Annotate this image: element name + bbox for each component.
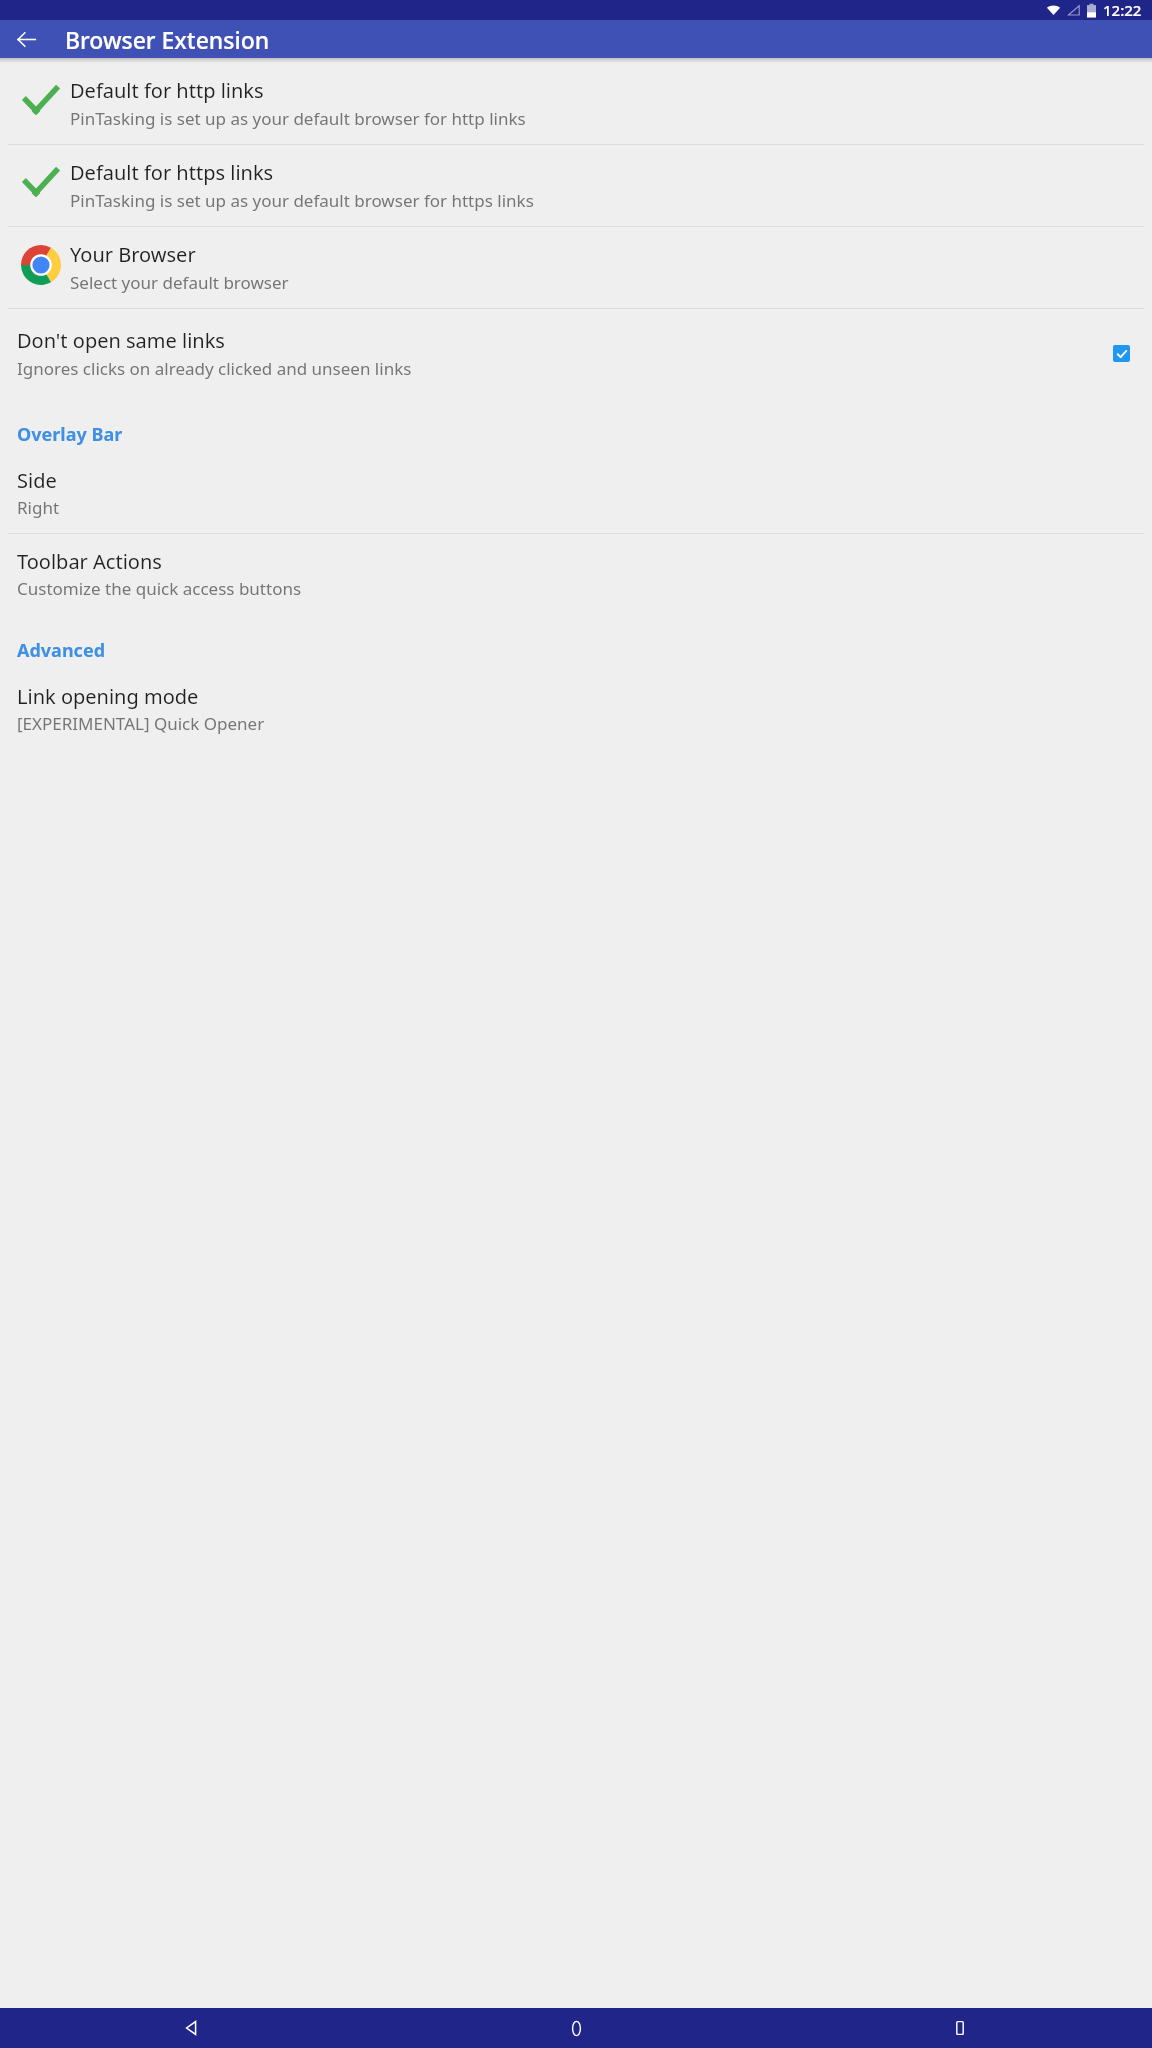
button[interactable]: Your Browser — [0, 227, 1152, 308]
button[interactable]: Default for https links — [0, 145, 1152, 226]
staticText: PinTasking is set up as your default bro… — [70, 107, 526, 130]
button[interactable]: Back — [0, 2008, 384, 2048]
button[interactable]: Default for http links — [0, 63, 1152, 144]
staticText: Default for http links — [70, 77, 264, 104]
staticText: Advanced — [17, 638, 106, 663]
button[interactable]: Side — [0, 453, 1152, 533]
staticText: Select your default browser — [70, 271, 289, 294]
staticText: Your Browser — [70, 241, 196, 268]
staticText: Don't open same links — [17, 327, 225, 354]
staticText: 12:22 — [1103, 0, 1142, 20]
button[interactable]: Recent apps — [768, 2008, 1152, 2048]
button[interactable]: Back — [8, 21, 44, 57]
staticText: [EXPERIMENTAL] Quick Opener — [17, 712, 265, 735]
staticText: Link opening mode — [17, 683, 199, 710]
button[interactable]: Toolbar Actions — [0, 534, 1152, 614]
staticText: Ignores clicks on already clicked and un… — [17, 357, 412, 380]
staticText: Browser Extension — [65, 24, 270, 55]
staticText: Default for https links — [70, 159, 274, 186]
button[interactable]: Don't open same links — [0, 309, 1152, 398]
staticText: Overlay Bar — [17, 422, 123, 447]
staticText: Right — [17, 496, 60, 519]
button[interactable]: Link opening mode — [0, 669, 1152, 749]
staticText: Toolbar Actions — [17, 548, 162, 575]
staticText: Side — [17, 467, 57, 494]
staticText: PinTasking is set up as your default bro… — [70, 189, 534, 212]
staticText: Customize the quick access buttons — [17, 577, 302, 600]
button[interactable]: Home — [384, 2008, 768, 2048]
